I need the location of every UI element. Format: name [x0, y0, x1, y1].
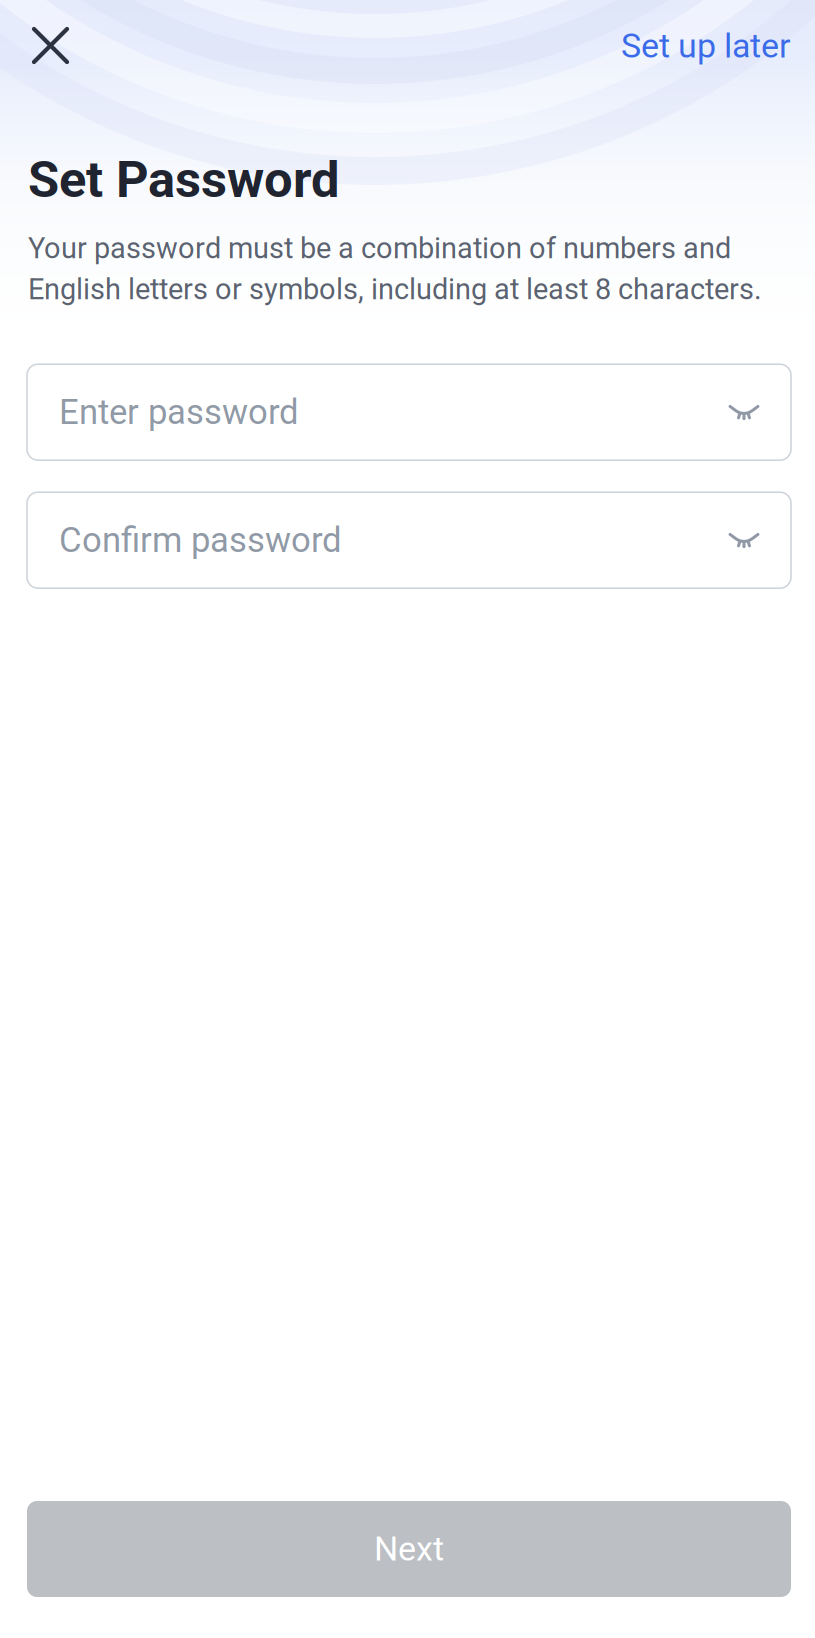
- button[interactable]: Set up later: [621, 0, 815, 84]
- staticText: Next: [374, 1529, 444, 1569]
- staticText: Set up later: [621, 26, 791, 66]
- staticText: Your password must be a combination of n…: [28, 231, 762, 306]
- staticText: Confirm password: [59, 520, 342, 560]
- button[interactable]: Enter password: [27, 364, 791, 460]
- staticText: Enter password: [59, 392, 299, 432]
- button[interactable]: Close: [0, 0, 85, 84]
- button[interactable]: Confirm password: [27, 492, 791, 588]
- button[interactable]: Next: [27, 1501, 791, 1597]
- staticText: Set Password: [28, 150, 340, 209]
